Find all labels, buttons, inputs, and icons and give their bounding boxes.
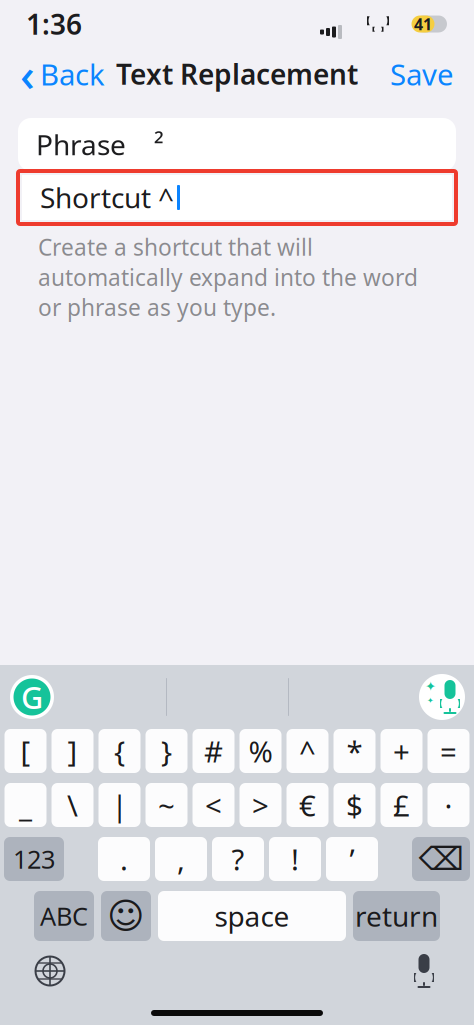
staticText: €: [299, 785, 316, 824]
button[interactable]: Emoji: [101, 891, 151, 941]
staticText: +: [393, 731, 410, 770]
staticText: G: [21, 677, 43, 717]
button[interactable]: Save: [378, 51, 466, 97]
staticText: }: [161, 731, 172, 770]
staticText: 1:36: [26, 5, 82, 43]
button[interactable]: Phrase: [18, 118, 456, 171]
staticText: ]: [67, 731, 77, 770]
staticText: {: [114, 731, 125, 770]
button[interactable]: Shortcut: [22, 175, 452, 220]
staticText: £: [393, 785, 410, 824]
staticText: ·: [444, 785, 452, 824]
button[interactable]: ~: [145, 783, 187, 827]
button[interactable]: #: [192, 729, 234, 773]
staticText: 123: [13, 842, 55, 876]
staticText: Phrase: [36, 126, 126, 163]
button[interactable]: =: [427, 729, 469, 773]
staticText: |: [111, 785, 127, 824]
staticText: $: [346, 785, 363, 824]
button[interactable]: space: [158, 891, 346, 941]
staticText: ^: [299, 731, 316, 770]
staticText: ^: [158, 179, 174, 216]
staticText: %: [248, 731, 272, 770]
button[interactable]: |: [98, 783, 140, 827]
staticText: Back: [40, 54, 105, 93]
staticText: Text Replacement: [116, 55, 358, 93]
button[interactable]: %: [239, 729, 281, 773]
button[interactable]: €: [286, 783, 328, 827]
button[interactable]: ,: [155, 837, 207, 881]
button[interactable]: Dictation: [402, 949, 446, 993]
staticText: .: [120, 839, 128, 878]
staticText: !: [291, 839, 299, 878]
staticText: =: [440, 731, 457, 770]
button[interactable]: Smart dictation: [418, 673, 466, 721]
staticText: ~: [158, 785, 175, 824]
staticText: Create a shortcut that will automaticall…: [38, 232, 418, 322]
staticText: >: [252, 785, 269, 824]
button[interactable]: return: [353, 891, 440, 941]
staticText: Save: [390, 54, 454, 93]
staticText: [: [20, 731, 30, 770]
staticText: space: [214, 897, 289, 935]
button[interactable]: +: [380, 729, 422, 773]
button[interactable]: ?: [212, 837, 264, 881]
button[interactable]: ’: [326, 837, 378, 881]
button[interactable]: .: [98, 837, 150, 881]
button[interactable]: \: [51, 783, 93, 827]
staticText: \: [67, 785, 78, 824]
button[interactable]: ABC: [34, 891, 94, 941]
button[interactable]: <: [192, 783, 234, 827]
button[interactable]: ‹: [8, 51, 117, 97]
button[interactable]: !: [269, 837, 321, 881]
button[interactable]: {: [98, 729, 140, 773]
staticText: ‹: [20, 44, 35, 104]
button[interactable]: >: [239, 783, 281, 827]
staticText: *: [346, 731, 362, 770]
button[interactable]: Grammarly keyboard: [8, 673, 56, 721]
staticText: ⌫: [418, 841, 463, 877]
staticText: 41: [414, 13, 432, 35]
button[interactable]: £: [380, 783, 422, 827]
staticText: ABC: [40, 899, 88, 933]
staticText: <: [205, 785, 222, 824]
staticText: ,: [177, 839, 185, 878]
staticText: return: [355, 897, 438, 935]
staticText: ’: [349, 839, 354, 878]
staticText: _: [19, 785, 32, 824]
button[interactable]: [: [4, 729, 46, 773]
button[interactable]: ]: [51, 729, 93, 773]
staticText: Shortcut: [40, 179, 151, 216]
button[interactable]: *: [333, 729, 375, 773]
staticText: ☺: [107, 896, 145, 936]
button[interactable]: ^: [286, 729, 328, 773]
staticText: ✦: [425, 679, 436, 694]
staticText: ?: [231, 839, 244, 878]
staticText: ✦: [427, 696, 434, 705]
button[interactable]: ·: [427, 783, 469, 827]
staticText: ²: [154, 126, 164, 163]
staticText: #: [204, 731, 223, 770]
button[interactable]: $: [333, 783, 375, 827]
button[interactable]: Delete: [412, 837, 470, 881]
button[interactable]: }: [145, 729, 187, 773]
button[interactable]: 123: [4, 837, 64, 881]
button[interactable]: _: [4, 783, 46, 827]
button[interactable]: Next keyboard: [28, 949, 72, 993]
